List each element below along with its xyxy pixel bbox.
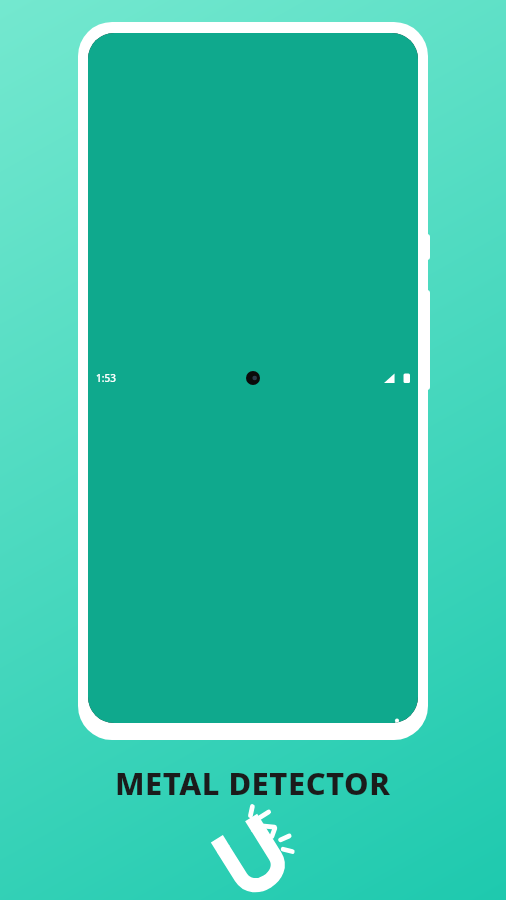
staticText: 1:53 xyxy=(96,371,116,385)
staticText: METAL DETECTOR xyxy=(115,762,391,804)
